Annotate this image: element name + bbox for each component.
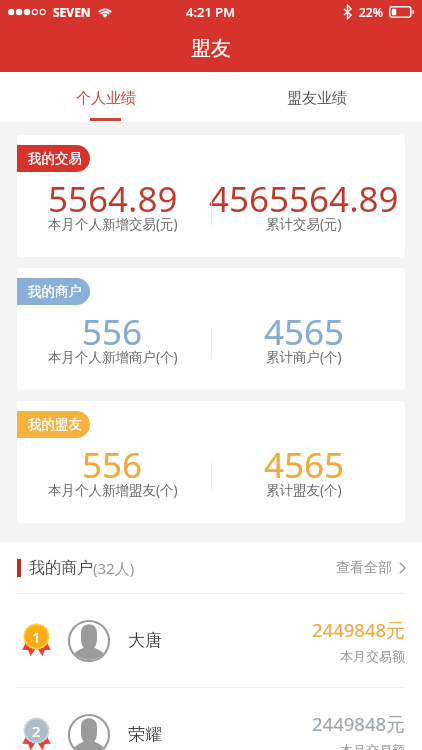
staticText: 2 <box>32 721 41 741</box>
staticText: 本月个人新增交易(元) <box>48 215 178 233</box>
staticText: 大唐 <box>128 630 162 651</box>
button[interactable]: 我的盟友 <box>17 401 405 523</box>
staticText: 2449848元 <box>312 617 405 642</box>
staticText: 本月交易额 <box>340 742 405 750</box>
staticText: 22% <box>359 4 383 20</box>
staticText: 累计商户(个) <box>266 348 342 366</box>
button[interactable]: 2 <box>0 688 422 750</box>
staticText: 我的盟友 <box>28 416 82 433</box>
staticText: 4565564.89 <box>209 175 399 223</box>
button[interactable]: 盟友业绩 <box>211 72 422 122</box>
staticText: 累计交易(元) <box>266 215 342 233</box>
button[interactable]: 我的商户 <box>17 268 405 390</box>
button[interactable]: 个人业绩 <box>0 72 211 122</box>
staticText: 盟友 <box>191 36 231 61</box>
button[interactable]: 1 <box>0 594 422 687</box>
staticText: 累计盟友(个) <box>266 481 342 499</box>
staticText: 本月个人新增盟友(个) <box>48 481 178 499</box>
staticText: 2449848元 <box>312 711 405 736</box>
staticText: 本月个人新增商户(个) <box>48 348 178 366</box>
staticText: 个人业绩 <box>76 89 136 108</box>
staticText: 1 <box>32 627 41 647</box>
staticText: 盟友业绩 <box>287 89 347 108</box>
staticText: 本月交易额 <box>340 648 405 664</box>
staticText: 荣耀 <box>128 724 162 745</box>
button[interactable]: 我的交易 <box>17 135 405 257</box>
staticText: 我的商户 <box>29 558 93 578</box>
staticText: 4:21 PM <box>186 3 236 21</box>
staticText: 556 <box>82 308 143 356</box>
staticText: 556 <box>82 441 143 489</box>
button[interactable]: 我的商户 <box>0 542 422 593</box>
staticText: 查看全部 <box>336 559 392 577</box>
staticText: 我的商户 <box>28 283 82 300</box>
staticText: (32人) <box>93 558 135 578</box>
staticText: SEVEN <box>53 4 91 20</box>
staticText: 4565 <box>264 308 345 356</box>
staticText: 5564.89 <box>48 175 178 223</box>
staticText: 4565 <box>264 441 345 489</box>
staticText: 我的交易 <box>28 150 82 167</box>
